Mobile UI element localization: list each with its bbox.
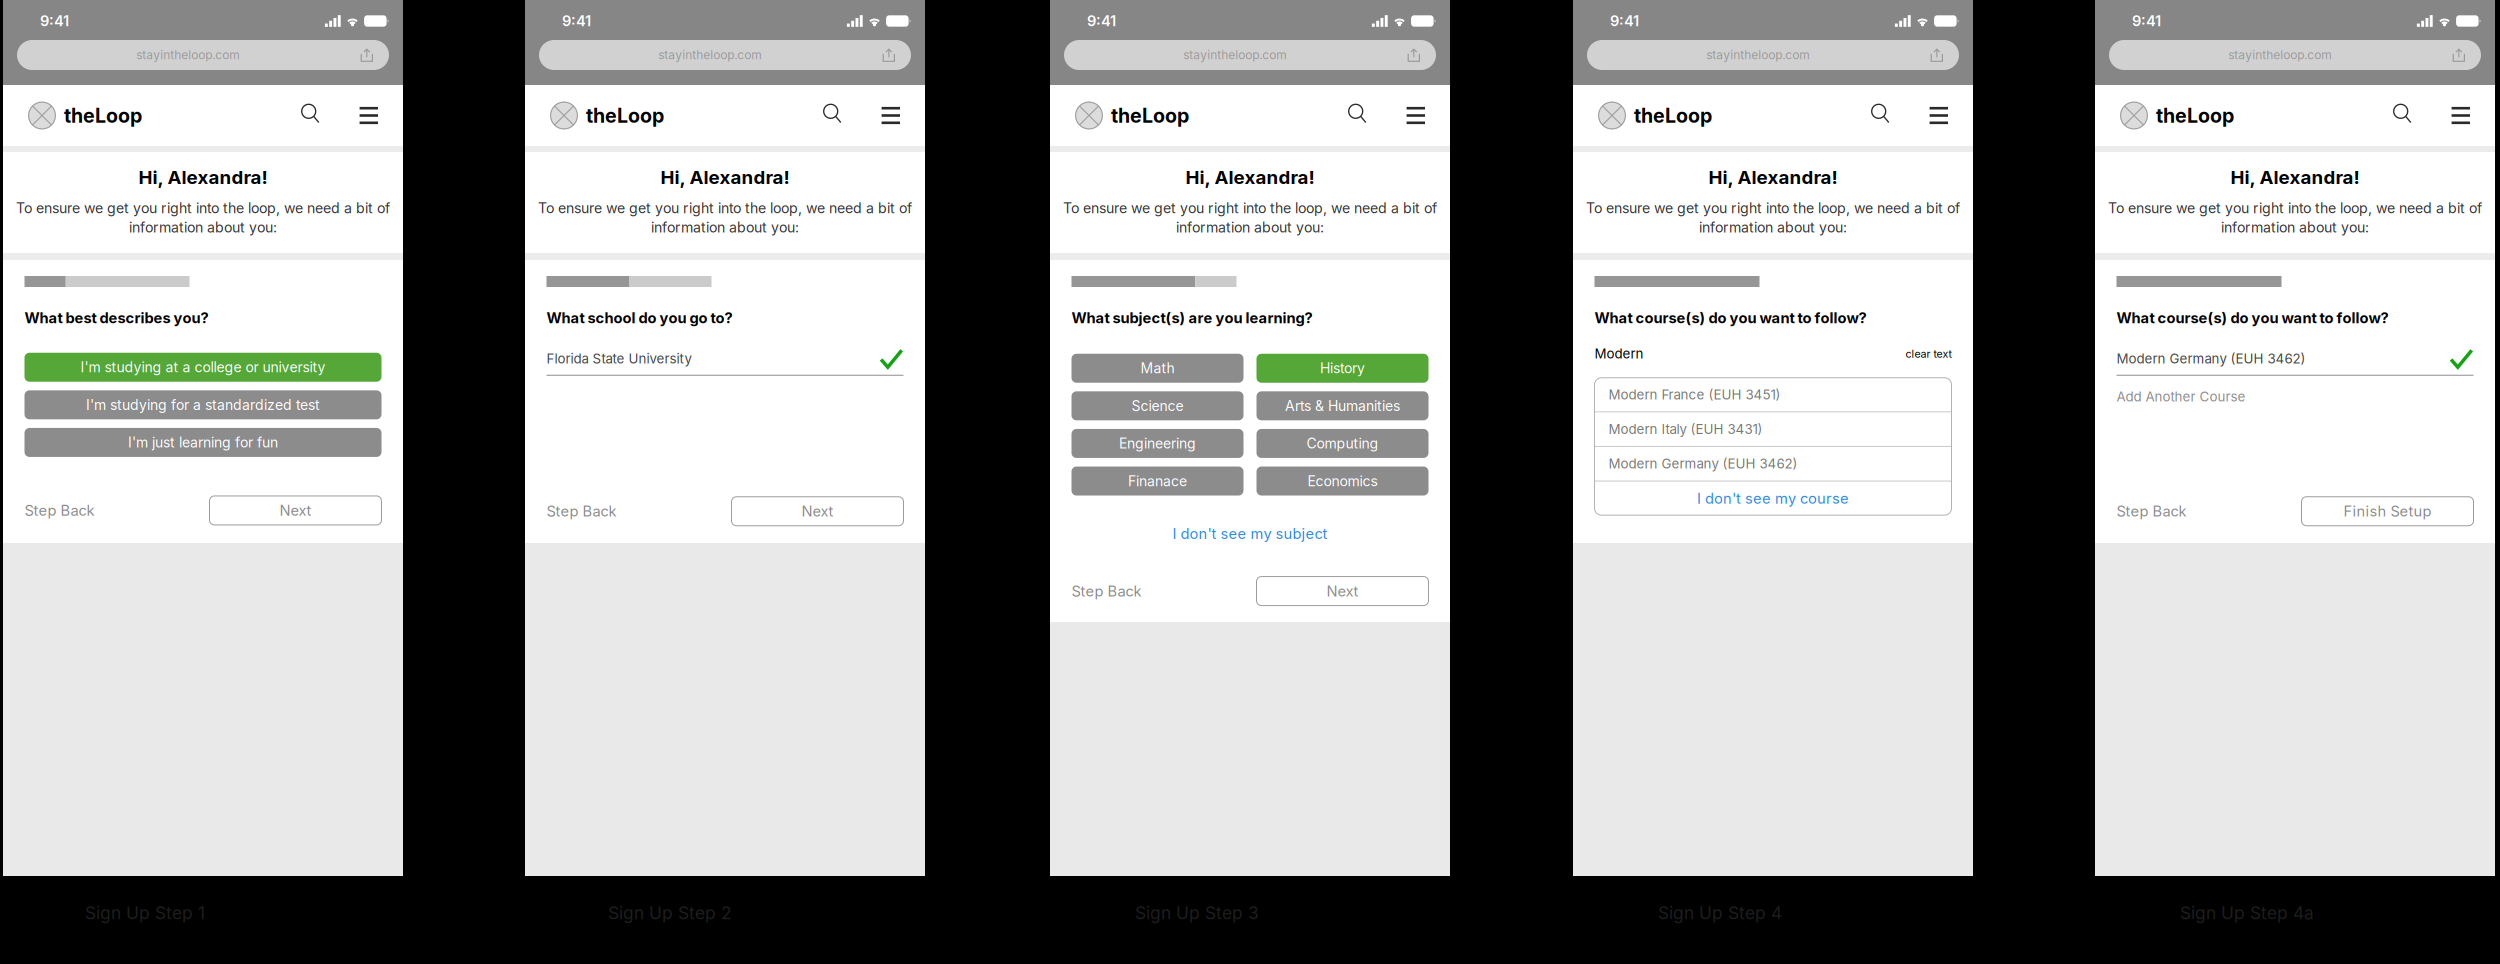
- button[interactable]: Search: [1871, 103, 1896, 128]
- staticText: Hi, Alexandra!: [1708, 166, 1837, 189]
- button[interactable]: Next: [731, 497, 903, 526]
- staticText: theLoop: [2156, 104, 2234, 127]
- staticText: 9:41: [40, 12, 69, 30]
- button[interactable]: Step Back: [24, 496, 94, 525]
- button[interactable]: Step Back: [546, 497, 616, 526]
- button[interactable]: Modern Germany (EUH 3462): [1594, 447, 1951, 480]
- staticText: information about you:: [2221, 219, 2369, 236]
- staticText: stayintheloop.com: [2228, 48, 2332, 62]
- staticText: To ensure we get you right into the loop…: [16, 200, 390, 217]
- staticText: I don't see my course: [1697, 489, 1849, 507]
- staticText: stayintheloop.com: [658, 48, 762, 62]
- button[interactable]: Menu: [2418, 107, 2470, 124]
- button[interactable]: Menu: [848, 107, 900, 124]
- button[interactable]: theLoop: [550, 101, 664, 129]
- button[interactable]: Step Back: [1071, 576, 1141, 605]
- button[interactable]: Science: [1071, 391, 1243, 420]
- staticText: Step Back: [2116, 502, 2186, 520]
- staticText: Hi, Alexandra!: [1185, 166, 1314, 189]
- button[interactable]: I don't see my subject: [1071, 523, 1428, 543]
- staticText: What course(s) do you want to follow?: [2116, 309, 2388, 327]
- staticText: Modern Germany (EUH 3462): [2116, 351, 2305, 367]
- staticText: I don't see my subject: [1172, 525, 1327, 542]
- button[interactable]: I'm just learning for fun: [24, 428, 381, 457]
- staticText: Engineering: [1119, 435, 1196, 452]
- button[interactable]: I'm studying for a standardized test: [24, 390, 381, 419]
- staticText: What best describes you?: [24, 309, 208, 327]
- button[interactable]: I don't see my course: [1594, 481, 1951, 515]
- staticText: Next: [1326, 582, 1358, 600]
- staticText: I'm just learning for fun: [128, 434, 278, 451]
- staticText: To ensure we get you right into the loop…: [2108, 200, 2482, 217]
- staticText: Next: [801, 502, 833, 520]
- staticText: Computing: [1306, 435, 1378, 452]
- staticText: 9:41: [2132, 12, 2161, 30]
- staticText: Finanace: [1128, 473, 1187, 489]
- staticText: Modern Germany (EUH 3462): [1608, 456, 1797, 472]
- staticText: Modern: [1594, 346, 1643, 362]
- staticText: Sign Up Step 2: [608, 902, 732, 923]
- staticText: Hi, Alexandra!: [2230, 166, 2359, 189]
- staticText: 9:41: [1087, 12, 1116, 30]
- staticText: information about you:: [651, 219, 799, 236]
- button[interactable]: Economics: [1256, 466, 1428, 495]
- staticText: Next: [279, 502, 311, 519]
- staticText: stayintheloop.com: [1706, 48, 1810, 62]
- staticText: Math: [1140, 360, 1174, 377]
- button[interactable]: Menu: [1373, 107, 1425, 124]
- button[interactable]: Search: [823, 103, 848, 128]
- staticText: To ensure we get you right into the loop…: [1063, 200, 1437, 217]
- button[interactable]: Step Back: [2116, 497, 2186, 526]
- button[interactable]: theLoop: [28, 101, 142, 129]
- button[interactable]: Menu: [326, 107, 378, 124]
- button[interactable]: Search: [2393, 103, 2418, 128]
- button[interactable]: Math: [1071, 354, 1243, 383]
- staticText: I'm studying at a college or university: [80, 359, 325, 376]
- button[interactable]: Search: [1348, 103, 1373, 128]
- button[interactable]: Arts & Humanities: [1256, 391, 1428, 420]
- staticText: theLoop: [1634, 104, 1712, 127]
- staticText: Step Back: [546, 502, 616, 520]
- staticText: I'm studying for a standardized test: [86, 396, 320, 413]
- staticText: information about you:: [1699, 219, 1847, 236]
- staticText: Florida State University: [546, 351, 691, 367]
- button[interactable]: Modern Italy (EUH 3431): [1594, 412, 1951, 446]
- button[interactable]: I'm studying at a college or university: [24, 353, 381, 382]
- staticText: Step Back: [1071, 582, 1141, 600]
- button[interactable]: clear text: [1905, 347, 1951, 360]
- staticText: What subject(s) are you learning?: [1071, 309, 1312, 327]
- staticText: What course(s) do you want to follow?: [1594, 309, 1866, 327]
- staticText: theLoop: [64, 104, 142, 127]
- staticText: Science: [1131, 397, 1183, 414]
- button[interactable]: Next: [209, 496, 381, 525]
- staticText: To ensure we get you right into the loop…: [538, 200, 912, 217]
- button[interactable]: Menu: [1896, 107, 1948, 124]
- staticText: stayintheloop.com: [1183, 48, 1287, 62]
- staticText: Modern Italy (EUH 3431): [1608, 421, 1762, 437]
- staticText: clear text: [1905, 347, 1951, 360]
- button[interactable]: Finanace: [1071, 466, 1243, 495]
- button[interactable]: theLoop: [2120, 101, 2234, 129]
- staticText: Sign Up Step 1: [85, 902, 205, 923]
- button[interactable]: Finish Setup: [2301, 497, 2473, 526]
- button[interactable]: Add Another Course: [2116, 389, 2245, 405]
- staticText: information about you:: [1176, 219, 1324, 236]
- staticText: What school do you go to?: [546, 309, 732, 327]
- staticText: stayintheloop.com: [136, 48, 240, 62]
- button[interactable]: theLoop: [1075, 101, 1189, 129]
- button[interactable]: Modern France (EUH 3451): [1594, 378, 1951, 411]
- staticText: Sign Up Step 3: [1135, 902, 1259, 923]
- staticText: 9:41: [1610, 12, 1639, 30]
- button[interactable]: History: [1256, 354, 1428, 383]
- button[interactable]: Computing: [1256, 429, 1428, 458]
- button[interactable]: theLoop: [1598, 101, 1712, 129]
- staticText: theLoop: [1111, 104, 1189, 127]
- staticText: Finish Setup: [2343, 502, 2431, 520]
- staticText: theLoop: [586, 104, 664, 127]
- button[interactable]: Engineering: [1071, 429, 1243, 458]
- button[interactable]: Search: [301, 103, 326, 128]
- staticText: Sign Up Step 4: [1658, 902, 1782, 923]
- staticText: Arts & Humanities: [1285, 397, 1400, 414]
- staticText: Step Back: [24, 502, 94, 519]
- button[interactable]: Next: [1256, 576, 1428, 605]
